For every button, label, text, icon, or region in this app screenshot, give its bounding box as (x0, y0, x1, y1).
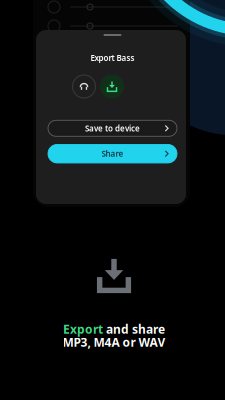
staticText: Share (101, 148, 123, 159)
button[interactable]: Download (100, 74, 124, 98)
staticText: MP3, M4A or WAV (62, 334, 165, 350)
staticText: and share (103, 321, 165, 337)
staticText: Export (63, 321, 103, 337)
button[interactable]: Share (48, 144, 177, 163)
button[interactable]: Preview (72, 75, 95, 98)
staticText: Export Bass (90, 53, 134, 63)
button[interactable]: Save to device (48, 120, 177, 136)
staticText: Save to device (85, 123, 140, 134)
